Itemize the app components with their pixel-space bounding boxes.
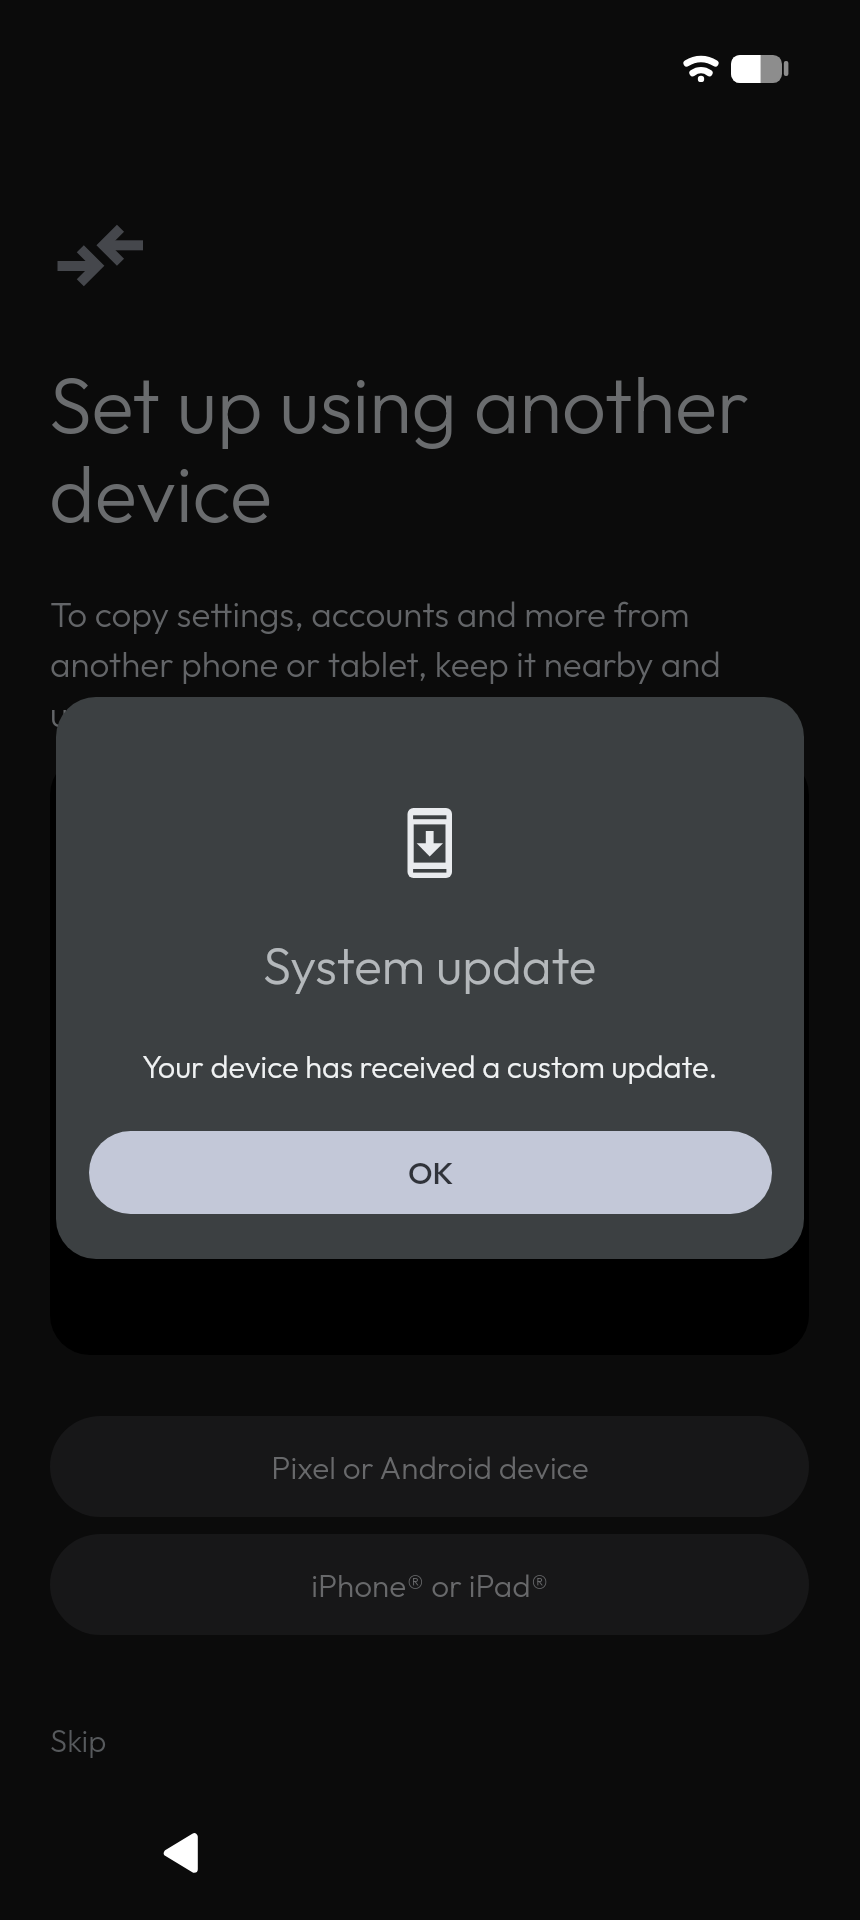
staticText: OK xyxy=(408,1153,454,1192)
staticText: Pixel or Android device xyxy=(271,1447,589,1487)
button[interactable]: OK xyxy=(89,1131,772,1214)
staticText: Your device has received a custom update… xyxy=(142,1047,718,1086)
button[interactable]: iPhone® or iPad® xyxy=(50,1534,809,1635)
button[interactable]: Back xyxy=(139,1811,219,1891)
staticText: Set up using another device xyxy=(49,355,819,542)
staticText: To copy settings, accounts and more from… xyxy=(50,592,750,736)
button[interactable]: Pixel or Android device xyxy=(50,1416,809,1517)
staticText: iPhone® or iPad® xyxy=(311,1565,549,1605)
staticText: Skip xyxy=(50,1721,107,1760)
button[interactable]: Skip xyxy=(28,1707,129,1774)
staticText: System update xyxy=(263,933,597,997)
